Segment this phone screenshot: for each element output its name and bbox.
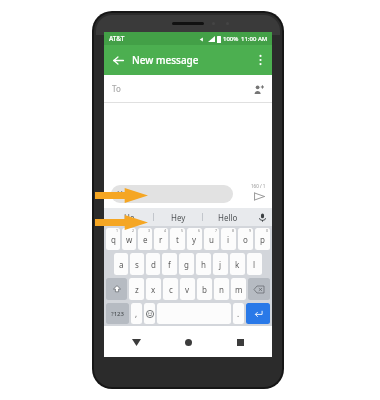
- button[interactable]: w: [122, 228, 136, 250]
- staticText: 5: [181, 228, 184, 233]
- button[interactable]: Home: [178, 332, 198, 352]
- button[interactable]: Send: [251, 188, 267, 204]
- button[interactable]: Back: [108, 50, 128, 70]
- staticText: 0: [266, 228, 269, 233]
- button[interactable]: h: [196, 253, 211, 275]
- button[interactable]: x: [146, 278, 161, 300]
- button[interactable]: d: [146, 253, 160, 275]
- button[interactable]: z: [129, 278, 144, 300]
- button[interactable]: ,: [131, 303, 142, 324]
- button[interactable]: Emoji: [144, 303, 155, 324]
- button[interactable]: j: [213, 253, 228, 275]
- staticText: New message: [132, 53, 199, 67]
- button[interactable]: Voice input: [252, 208, 272, 226]
- staticText: h: [201, 259, 206, 270]
- staticText: i: [227, 234, 230, 245]
- button[interactable]: l: [247, 253, 262, 275]
- button[interactable]: u: [204, 228, 219, 250]
- staticText: c: [169, 284, 173, 295]
- staticText: 4: [164, 228, 167, 233]
- button[interactable]: Enter: [246, 303, 270, 324]
- button[interactable]: a: [114, 253, 128, 275]
- staticText: u: [209, 234, 214, 245]
- staticText: Hello: [218, 212, 238, 223]
- button[interactable]: Recents: [230, 332, 250, 352]
- staticText: x: [151, 284, 156, 295]
- button[interactable]: g: [179, 253, 194, 275]
- staticText: Hey: [171, 212, 186, 223]
- staticText: 160 / 1: [251, 183, 266, 189]
- staticText: AT&T: [109, 34, 125, 43]
- button[interactable]: Shift: [106, 278, 127, 300]
- staticText: l: [253, 259, 256, 270]
- staticText: v: [185, 284, 190, 295]
- staticText: f: [168, 259, 171, 270]
- staticText: q: [111, 234, 116, 245]
- button[interactable]: c: [163, 278, 178, 300]
- button[interactable]: He: [111, 185, 233, 203]
- staticText: d: [151, 259, 156, 270]
- button[interactable]: .: [233, 303, 244, 324]
- button[interactable]: i: [221, 228, 236, 250]
- button[interactable]: t: [170, 228, 185, 250]
- button[interactable]: y: [187, 228, 202, 250]
- staticText: a: [119, 259, 124, 270]
- staticText: To: [112, 83, 121, 94]
- button[interactable]: o: [238, 228, 253, 250]
- staticText: t: [176, 234, 179, 245]
- staticText: He: [117, 189, 128, 200]
- button[interactable]: v: [180, 278, 195, 300]
- button[interactable]: Add contact: [250, 81, 266, 97]
- staticText: n: [219, 284, 224, 295]
- staticText: k: [235, 259, 240, 270]
- button[interactable]: ?123: [106, 303, 129, 324]
- staticText: m: [235, 284, 243, 295]
- button[interactable]: q: [106, 228, 120, 250]
- button[interactable]: r: [154, 228, 168, 250]
- button[interactable]: Backspace: [248, 278, 270, 300]
- staticText: 1: [116, 228, 119, 233]
- button[interactable]: b: [197, 278, 212, 300]
- staticText: 3: [148, 228, 151, 233]
- staticText: 2: [132, 228, 135, 233]
- staticText: .: [237, 308, 240, 319]
- staticText: 9: [249, 228, 252, 233]
- button[interactable]: He: [104, 208, 154, 226]
- staticText: 7: [215, 228, 218, 233]
- staticText: He: [124, 212, 135, 223]
- button[interactable]: Hello: [203, 208, 252, 226]
- button[interactable]: s: [130, 253, 144, 275]
- button[interactable]: f: [162, 253, 177, 275]
- staticText: 11:00 AM: [241, 35, 268, 43]
- staticText: 100%: [223, 35, 239, 43]
- staticText: ?123: [111, 310, 124, 318]
- staticText: 6: [198, 228, 201, 233]
- staticText: w: [126, 234, 133, 245]
- staticText: s: [135, 259, 139, 270]
- staticText: g: [184, 259, 189, 270]
- staticText: o: [243, 234, 248, 245]
- staticText: e: [143, 234, 148, 245]
- button[interactable]: n: [214, 278, 229, 300]
- staticText: r: [159, 234, 163, 245]
- staticText: j: [219, 259, 222, 270]
- button[interactable]: To: [104, 75, 272, 102]
- staticText: 8: [232, 228, 235, 233]
- button[interactable]: m: [231, 278, 246, 300]
- button[interactable]: Hey: [154, 208, 203, 226]
- staticText: ,: [135, 308, 138, 319]
- button[interactable]: k: [230, 253, 245, 275]
- button[interactable]: p: [255, 228, 270, 250]
- staticText: y: [192, 234, 197, 245]
- staticText: p: [260, 234, 265, 245]
- button[interactable]: More options: [251, 51, 269, 69]
- staticText: z: [135, 284, 139, 295]
- button[interactable]: e: [138, 228, 152, 250]
- staticText: b: [202, 284, 207, 295]
- button[interactable]: Back: [126, 332, 146, 352]
